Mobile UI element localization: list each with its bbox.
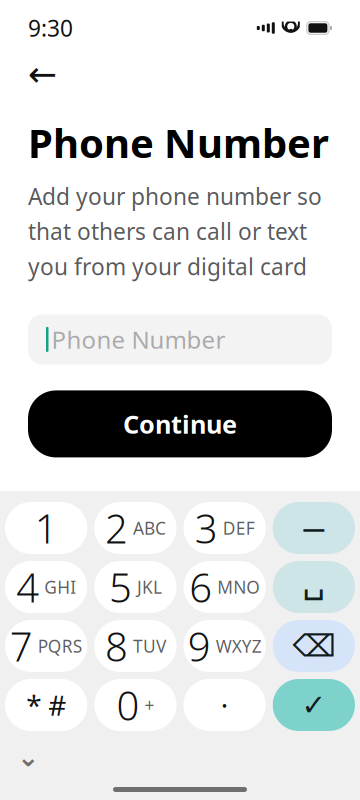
button[interactable]: 7: [5, 620, 87, 672]
button[interactable]: 0: [94, 679, 176, 731]
button[interactable]: Back: [28, 54, 72, 94]
staticText: ·: [221, 686, 229, 724]
staticText: Phone Number: [28, 116, 329, 169]
button[interactable]: Dash: [273, 502, 355, 554]
staticText: Phone Number: [51, 323, 225, 355]
staticText: 7: [10, 619, 33, 672]
staticText: Add your phone number so that others can…: [28, 181, 322, 281]
staticText: ✓: [301, 688, 326, 722]
button[interactable]: Hide keyboard: [5, 740, 51, 774]
staticText: 9: [188, 619, 211, 672]
button[interactable]: 4: [5, 561, 87, 613]
button[interactable]: Space: [273, 561, 355, 613]
staticText: +: [144, 693, 154, 716]
staticText: * #: [26, 686, 66, 724]
staticText: PQRS: [38, 634, 83, 657]
staticText: DEF: [223, 516, 255, 539]
staticText: 0: [116, 678, 139, 731]
button[interactable]: 8: [94, 620, 176, 672]
staticText: ABC: [133, 516, 166, 539]
button[interactable]: 1: [5, 502, 87, 554]
button[interactable]: Continue: [28, 390, 332, 457]
staticText: —: [302, 513, 325, 543]
staticText: 6: [189, 560, 212, 613]
button[interactable]: 6: [183, 561, 266, 613]
staticText: 1: [35, 501, 58, 554]
button[interactable]: Phone Number: [28, 314, 332, 364]
staticText: GHI: [44, 575, 76, 598]
button[interactable]: Done: [273, 679, 355, 731]
staticText: TUV: [133, 634, 166, 657]
staticText: 3: [195, 501, 218, 554]
staticText: MNO: [217, 575, 260, 598]
button[interactable]: ·: [183, 679, 266, 731]
staticText: JKL: [137, 575, 162, 598]
staticText: ⌫: [292, 629, 335, 663]
button[interactable]: 3: [183, 502, 266, 554]
button[interactable]: 5: [94, 561, 176, 613]
staticText: 9:30: [28, 13, 73, 43]
staticText: ⌄: [17, 742, 39, 772]
staticText: 2: [105, 501, 128, 554]
staticText: 5: [109, 560, 132, 613]
button[interactable]: Backspace: [273, 620, 355, 672]
staticText: WXYZ: [216, 634, 262, 657]
staticText: Continue: [123, 407, 237, 441]
staticText: ←: [28, 54, 57, 94]
button[interactable]: 2: [94, 502, 176, 554]
button[interactable]: * #: [5, 679, 87, 731]
staticText: ⌴: [303, 558, 324, 616]
staticText: 4: [16, 560, 39, 613]
button[interactable]: 9: [183, 620, 266, 672]
staticText: 8: [105, 619, 128, 672]
